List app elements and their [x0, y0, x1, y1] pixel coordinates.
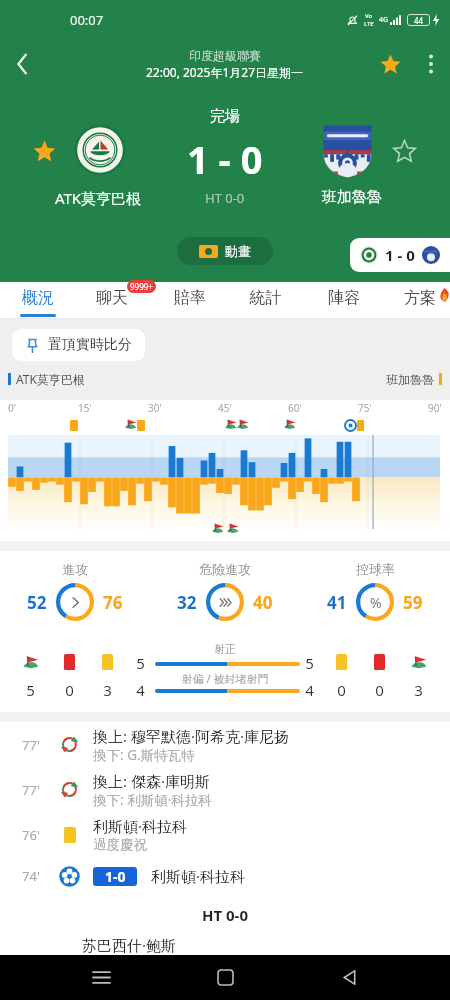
staticText: 0 — [336, 680, 347, 700]
staticText: 射偏 / 被封堵射門 — [0, 671, 450, 686]
staticText: Vo — [365, 12, 373, 20]
staticText: 完場 — [210, 107, 240, 126]
staticText: 置頂實時比分 — [48, 336, 132, 354]
button[interactable]: Favourite away team — [390, 137, 418, 165]
staticText: 3 — [410, 680, 427, 700]
button[interactable]: Recents — [78, 955, 124, 1000]
staticText: 換下: 利斯頓·科拉科 — [93, 791, 212, 809]
staticText: 5 — [301, 653, 318, 673]
staticText: 印度超級聯賽 — [189, 48, 261, 63]
staticText: HT 0-0 — [205, 189, 245, 207]
staticText: ATK莫亨巴根 — [0, 188, 196, 208]
staticText: 概況 — [22, 288, 54, 308]
staticText: 0' — [8, 401, 16, 415]
staticText: 班加魯魯 — [254, 188, 450, 207]
staticText: LTE — [364, 20, 374, 28]
staticText: 22:00, 2025年1月27日星期一 — [146, 64, 304, 80]
staticText: 9999+ — [130, 281, 153, 292]
staticText: 76 — [103, 591, 123, 614]
staticText: 陣容 — [328, 288, 360, 308]
staticText: 32 — [177, 591, 197, 614]
staticText: 76' — [18, 826, 44, 844]
staticText: HT 0-0 — [202, 905, 248, 925]
staticText: 賠率 — [174, 288, 206, 308]
button[interactable]: 77' — [0, 767, 450, 812]
staticText: 1 - 0 — [187, 133, 263, 185]
button[interactable]: 1 - 0 — [350, 238, 450, 272]
button[interactable]: 77' — [0, 722, 450, 767]
button[interactable]: Favourite home team — [30, 137, 58, 165]
button[interactable]: Favourite — [368, 42, 412, 86]
button[interactable]: 置頂實時比分 — [12, 329, 145, 361]
staticText: 換上: 穆罕默德·阿希克·庫尼扬 — [93, 726, 289, 746]
staticText: 利斯頓·科拉科 — [151, 866, 246, 886]
button[interactable]: 76' — [0, 812, 450, 857]
staticText: 班加魯魯 — [386, 372, 434, 387]
button[interactable]: 概況 — [2, 282, 74, 319]
staticText: 4G — [379, 15, 389, 25]
staticText: 0 — [374, 680, 385, 700]
staticText: 動畫 — [225, 243, 251, 259]
staticText: 聊天 — [96, 288, 128, 308]
button[interactable]: 危險進攻 — [150, 551, 300, 632]
staticText: 30' — [148, 401, 162, 415]
staticText: 41 — [327, 591, 347, 614]
button[interactable]: Back — [0, 42, 44, 86]
staticText: 5 — [132, 653, 149, 673]
staticText: 4 — [132, 680, 149, 700]
button[interactable]: 聊天 — [76, 282, 148, 319]
staticText: 77' — [18, 781, 44, 799]
button[interactable]: 方案 — [384, 282, 450, 319]
staticText: 44 — [414, 15, 424, 26]
button[interactable]: 陣容 — [308, 282, 380, 319]
button[interactable]: 74' — [0, 857, 450, 895]
staticText: 4 — [301, 680, 318, 700]
staticText: 射正 — [0, 642, 450, 656]
staticText: 00:07 — [70, 11, 104, 29]
staticText: 45' — [218, 401, 232, 415]
staticText: 77' — [18, 736, 44, 754]
staticText: 進攻 — [62, 561, 88, 577]
staticText: 90' — [428, 401, 442, 415]
button[interactable]: 進攻 — [0, 551, 150, 632]
staticText: 過度慶祝 — [93, 836, 147, 853]
button[interactable]: 統計 — [229, 282, 301, 319]
button[interactable]: 控球率 — [300, 551, 450, 632]
staticText: 52 — [27, 591, 47, 614]
staticText: 換下: G.斯特瓦特 — [93, 746, 195, 764]
staticText: 59 — [403, 591, 423, 614]
staticText: % — [370, 593, 382, 612]
staticText: 控球率 — [356, 561, 395, 577]
staticText: ATK莫亨巴根 — [16, 371, 85, 387]
staticText: 苏巴西什·鲍斯 — [82, 935, 177, 955]
staticText: 危險進攻 — [199, 561, 251, 577]
button[interactable]: More options — [412, 45, 450, 83]
staticText: 3 — [102, 680, 113, 700]
staticText: 60' — [288, 401, 302, 415]
button[interactable]: Back — [326, 955, 372, 1000]
staticText: 1 - 0 — [385, 245, 415, 265]
button[interactable]: 賠率 — [154, 282, 226, 319]
staticText: 方案 — [404, 288, 436, 308]
staticText: 74' — [18, 867, 44, 885]
staticText: 0 — [64, 680, 75, 700]
staticText: 40 — [253, 591, 273, 614]
staticText: 統計 — [249, 288, 281, 308]
staticText: 15' — [78, 401, 92, 415]
staticText: 75' — [358, 401, 372, 415]
button[interactable]: 動畫 — [177, 237, 273, 265]
staticText: 利斯頓·科拉科 — [93, 816, 188, 836]
staticText: 1-0 — [105, 867, 126, 886]
button[interactable]: Home — [202, 955, 248, 1000]
staticText: 換上: 傑森·庫明斯 — [93, 771, 210, 791]
staticText: 5 — [22, 680, 39, 700]
